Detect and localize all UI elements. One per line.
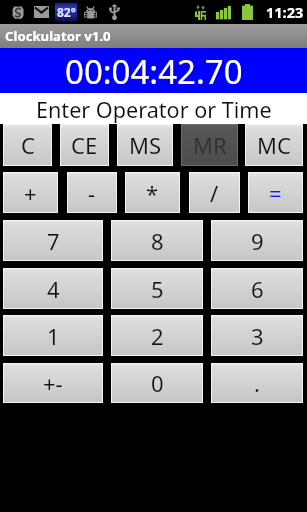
staticText: MC (257, 130, 291, 160)
button[interactable]: C (3, 124, 52, 166)
staticText: = (269, 178, 282, 208)
button[interactable]: 6 (211, 268, 303, 309)
button[interactable]: 9 (211, 220, 303, 261)
staticText: MR (193, 130, 227, 160)
button[interactable]: CE (60, 124, 109, 166)
staticText: 6 (251, 274, 264, 304)
button[interactable]: 8 (111, 220, 203, 261)
button[interactable]: 5 (111, 268, 203, 309)
staticText: 9 (251, 226, 264, 256)
staticText: C (21, 130, 35, 160)
staticText: - (88, 178, 96, 208)
staticText: 1 (47, 321, 60, 351)
staticText: MS (129, 130, 162, 160)
button[interactable]: +- (3, 363, 103, 403)
staticText: Enter Operator or Time (36, 95, 272, 124)
staticText: + (24, 178, 37, 208)
button[interactable]: - (67, 172, 117, 213)
button[interactable]: = (248, 172, 303, 213)
button[interactable]: 0 (111, 363, 203, 403)
staticText: 00:04:42.70 (65, 49, 243, 94)
staticText: 82° (57, 4, 76, 20)
button[interactable]: MR (181, 124, 238, 166)
staticText: / (210, 178, 219, 208)
staticText: 5 (151, 274, 164, 304)
staticText: * (146, 178, 159, 208)
button[interactable]: 1 (3, 315, 103, 356)
button[interactable]: . (211, 363, 303, 403)
staticText: . (254, 368, 260, 398)
button[interactable]: 2 (111, 315, 203, 356)
staticText: +- (43, 368, 63, 398)
staticText: 7 (47, 226, 60, 256)
staticText: 0 (151, 368, 164, 398)
staticText: 2 (151, 321, 164, 351)
button[interactable]: + (3, 172, 58, 213)
button[interactable]: MS (117, 124, 173, 166)
staticText: Clockulator v1.0 (5, 27, 111, 45)
button[interactable]: / (189, 172, 240, 213)
staticText: 8 (151, 226, 164, 256)
staticText: 3 (251, 321, 264, 351)
button[interactable]: MC (245, 124, 303, 166)
button[interactable]: 4 (3, 268, 103, 309)
staticText: 4 (47, 274, 60, 304)
button[interactable]: * (125, 172, 180, 213)
staticText: CE (71, 130, 98, 160)
staticText: 11:23 (266, 2, 304, 22)
button[interactable]: 3 (211, 315, 303, 356)
button[interactable]: 7 (3, 220, 103, 261)
